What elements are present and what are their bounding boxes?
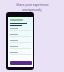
staticText: anonymously bbox=[22, 8, 42, 12]
button[interactable] bbox=[10, 61, 32, 65]
staticText: Share your experience bbox=[16, 3, 49, 7]
button[interactable] bbox=[10, 19, 23, 21]
